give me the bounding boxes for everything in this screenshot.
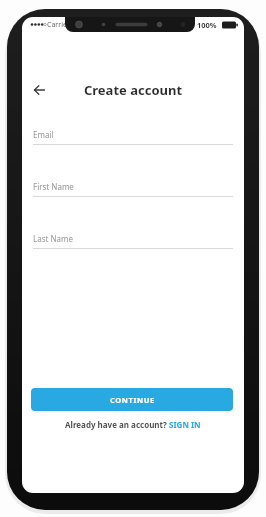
button[interactable]: Email <box>33 123 233 149</box>
button[interactable]: First Name <box>33 175 233 201</box>
button[interactable]: CONTINUE <box>31 388 233 411</box>
staticText: SIGN IN <box>167 419 201 430</box>
staticText: Email <box>33 129 54 140</box>
button[interactable] <box>27 79 52 101</box>
staticText: Last Name <box>33 233 74 244</box>
button[interactable]: Already have an account? <box>22 418 244 430</box>
staticText: Already have an account? <box>65 419 167 430</box>
staticText: CONTINUE <box>110 395 155 405</box>
button[interactable]: Last Name <box>33 227 233 253</box>
staticText: 100% <box>197 20 217 30</box>
staticText: Create account <box>22 81 244 99</box>
staticText: Carrier <box>47 20 70 30</box>
staticText: First Name <box>33 181 74 192</box>
